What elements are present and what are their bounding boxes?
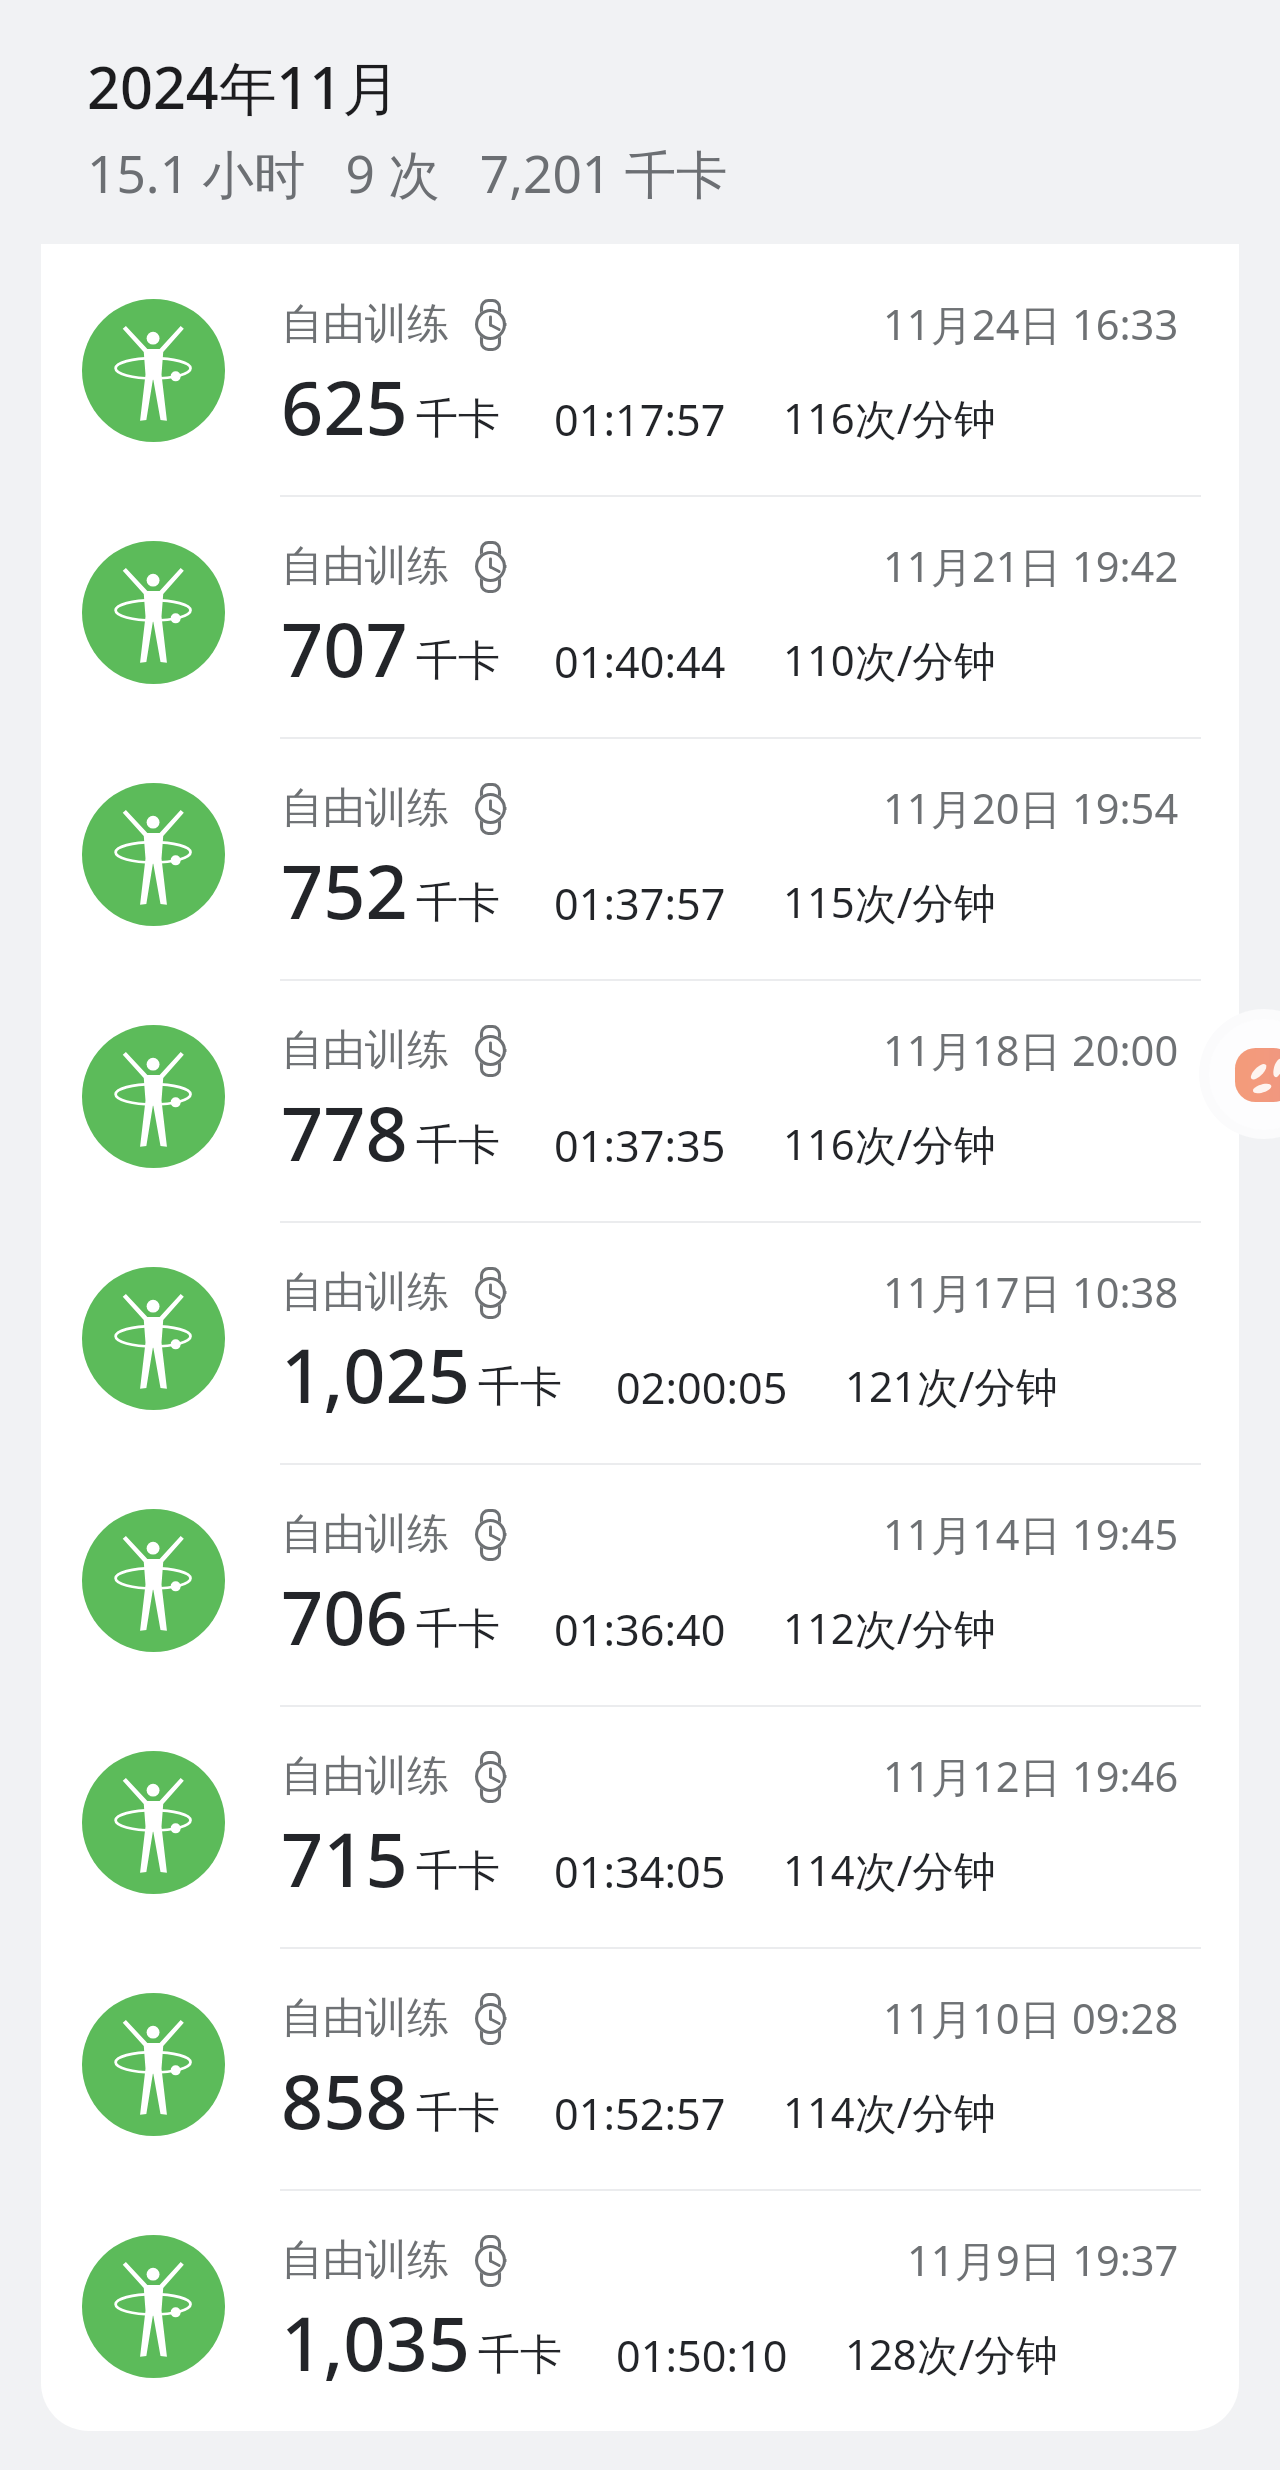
staticText: 01:17:57 xyxy=(554,390,726,449)
staticText: 121次/分钟 xyxy=(845,1357,1058,1414)
staticText: 自由训练 xyxy=(281,1508,449,1561)
staticText: 1,025 xyxy=(281,1324,470,1425)
staticText: 112次/分钟 xyxy=(783,1599,996,1656)
staticText: 01:40:44 xyxy=(554,632,726,691)
button[interactable]: 自由训练 xyxy=(41,739,1239,979)
staticText: 706 xyxy=(281,1566,408,1667)
staticText: 707 xyxy=(281,598,408,699)
button[interactable]: Add food record xyxy=(1199,1009,1280,1139)
staticText: 自由训练 xyxy=(281,2234,449,2287)
staticText: 千卡 xyxy=(416,877,500,930)
button[interactable]: 自由训练 xyxy=(41,1949,1239,2189)
button[interactable]: 自由训练 xyxy=(41,2191,1239,2431)
staticText: 778 xyxy=(281,1082,408,1183)
staticText: 15.1 小时 9 次 7,201 千卡 xyxy=(87,138,728,208)
staticText: 110次/分钟 xyxy=(783,631,996,688)
staticText: 千卡 xyxy=(416,393,500,446)
staticText: 11月12日 19:46 xyxy=(883,1748,1179,1805)
staticText: 752 xyxy=(281,840,408,941)
staticText: 11月14日 19:45 xyxy=(883,1506,1179,1563)
staticText: 115次/分钟 xyxy=(783,873,996,930)
staticText: 11月10日 09:28 xyxy=(883,1990,1179,2047)
staticText: 11月18日 20:00 xyxy=(883,1022,1179,1079)
staticText: 114次/分钟 xyxy=(783,2083,996,2140)
staticText: 自由训练 xyxy=(281,298,449,351)
staticText: 625 xyxy=(281,356,408,457)
staticText: 11月17日 10:38 xyxy=(883,1264,1179,1321)
staticText: 千卡 xyxy=(416,1845,500,1898)
button[interactable]: 自由训练 xyxy=(41,1465,1239,1705)
staticText: 千卡 xyxy=(416,1119,500,1172)
staticText: 千卡 xyxy=(416,2087,500,2140)
staticText: 千卡 xyxy=(478,1361,562,1414)
staticText: 858 xyxy=(281,2050,408,2151)
button[interactable]: 自由训练 xyxy=(41,1707,1239,1947)
staticText: 自由训练 xyxy=(281,1750,449,1803)
staticText: 千卡 xyxy=(416,1603,500,1656)
staticText: 01:37:57 xyxy=(554,874,726,933)
button[interactable]: 自由训练 xyxy=(41,981,1239,1221)
staticText: 01:36:40 xyxy=(554,1600,726,1659)
staticText: 自由训练 xyxy=(281,1266,449,1319)
staticText: 11月24日 16:33 xyxy=(883,296,1179,353)
staticText: 715 xyxy=(281,1808,408,1909)
staticText: 116次/分钟 xyxy=(783,1115,996,1172)
staticText: 千卡 xyxy=(478,2329,562,2382)
staticText: 116次/分钟 xyxy=(783,389,996,446)
staticText: 11月21日 19:42 xyxy=(883,538,1179,595)
staticText: 自由训练 xyxy=(281,1024,449,1077)
staticText: 1,035 xyxy=(281,2292,470,2393)
button[interactable]: 自由训练 xyxy=(41,1223,1239,1463)
staticText: 01:34:05 xyxy=(554,1842,726,1901)
staticText: 02:00:05 xyxy=(616,1358,788,1417)
staticText: 自由训练 xyxy=(281,782,449,835)
staticText: 01:37:35 xyxy=(554,1116,726,1175)
staticText: 11月20日 19:54 xyxy=(883,780,1179,837)
staticText: 01:50:10 xyxy=(616,2326,788,2385)
staticText: 11月9日 19:37 xyxy=(907,2232,1179,2289)
staticText: 128次/分钟 xyxy=(845,2325,1058,2382)
staticText: 2024年11月 xyxy=(87,47,400,126)
staticText: 114次/分钟 xyxy=(783,1841,996,1898)
staticText: 自由训练 xyxy=(281,540,449,593)
button[interactable]: 自由训练 xyxy=(41,497,1239,737)
staticText: 千卡 xyxy=(416,635,500,688)
button[interactable]: 自由训练 xyxy=(41,255,1239,495)
staticText: 自由训练 xyxy=(281,1992,449,2045)
staticText: 01:52:57 xyxy=(554,2084,726,2143)
